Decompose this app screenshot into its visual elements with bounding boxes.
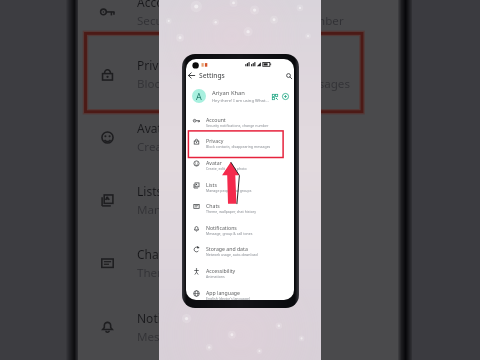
staticText: Storage and data [206,245,248,252]
staticText: A [196,90,202,102]
staticText: Ariyan Khan [212,89,245,97]
button[interactable]: Back [186,70,197,81]
staticText: Create, edit, share photo [206,166,247,171]
staticText: Block contacts, disappearing messages [206,144,271,149]
staticText: Theme, wallpaper, chat history [137,265,303,281]
button[interactable]: QR code [270,92,279,101]
staticText: Network usage, auto-download [206,252,258,257]
staticText: Chats [137,246,169,262]
staticText: Chats [206,202,220,209]
staticText: Settings [199,71,225,80]
staticText: Create, edit, share photo [137,139,272,155]
staticText: Manage people and groups [206,188,252,193]
staticText: Manage people and groups [137,202,288,218]
staticText: Message, group & call tones [137,329,291,345]
button[interactable]: Search [283,70,294,81]
staticText: Message, group & call tones [206,231,253,236]
staticText: Notifications [206,224,237,231]
staticText: Security notifications, change number [137,13,344,29]
staticText: Notifications [137,310,209,326]
button[interactable]: A [186,84,294,108]
staticText: Avatar [137,120,174,136]
staticText: App language [206,289,240,296]
staticText: Hey there! I am using What... [212,98,269,104]
staticText: Accessibility [206,267,236,274]
staticText: Account [137,0,183,10]
staticText: Account [206,116,226,123]
staticText: Privacy [137,57,178,73]
staticText: Lists [206,181,217,188]
staticText: Animations [206,274,225,279]
staticText: Privacy [206,137,224,144]
staticText: Block contacts, disappearing messages [137,76,350,92]
button[interactable]: Add account [281,92,290,101]
staticText: English (device's language) [206,296,250,300]
staticText: Lists [137,183,163,199]
staticText: Theme, wallpaper, chat history [206,209,257,214]
staticText: Security notifications, change number [206,123,269,128]
staticText: Avatar [206,159,222,166]
